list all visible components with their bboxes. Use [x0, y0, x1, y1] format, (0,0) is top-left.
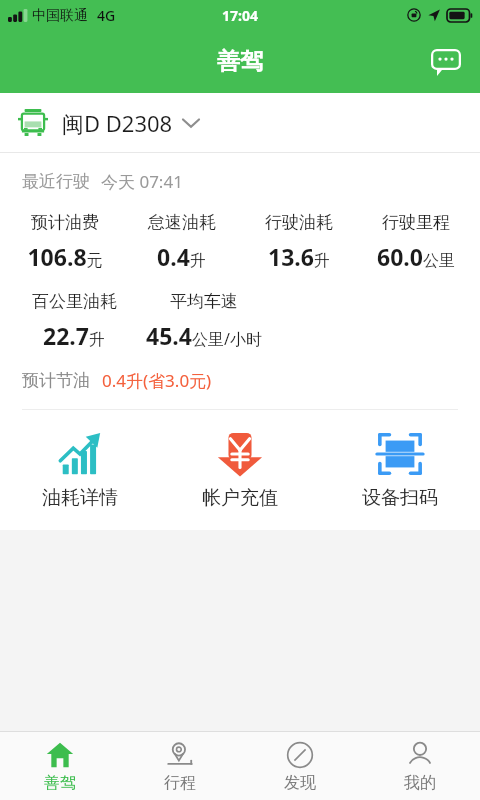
staticText: 预计油费 — [31, 212, 99, 233]
staticText: 善驾 — [217, 47, 263, 76]
button[interactable]: 设备扫码 — [320, 426, 480, 512]
staticText: 4G — [97, 6, 116, 25]
staticText: 中国联通 — [32, 7, 88, 25]
staticText: 22.7升 — [43, 320, 105, 351]
button[interactable]: 行程 — [120, 732, 240, 800]
staticText: 13.6升 — [268, 241, 330, 272]
staticText: 45.4公里/小时 — [146, 320, 262, 351]
staticText: 行驶里程 — [382, 212, 450, 233]
button[interactable]: 帐户充值 — [160, 426, 320, 512]
staticText: 帐户充值 — [202, 486, 278, 510]
staticText: 怠速油耗 — [148, 212, 216, 233]
staticText: 0.4升 — [157, 241, 206, 272]
staticText: 油耗详情 — [42, 486, 118, 510]
staticText: 平均车速 — [170, 291, 238, 312]
staticText: 17:04 — [222, 6, 258, 25]
staticText: 0.4升(省3.0元) — [102, 369, 212, 392]
button[interactable]: 行驶油耗 — [240, 212, 357, 272]
staticText: 行程 — [164, 773, 196, 793]
staticText: 善驾 — [44, 773, 76, 793]
button[interactable]: 我的 — [360, 732, 480, 800]
button[interactable]: 闽D D2308 — [0, 93, 480, 152]
staticText: 106.8元 — [27, 241, 103, 272]
staticText: 60.0公里 — [377, 241, 455, 272]
button[interactable]: 行驶里程 — [357, 212, 474, 272]
button[interactable]: 消息 — [422, 38, 470, 86]
staticText: 我的 — [404, 773, 436, 793]
staticText: 行驶油耗 — [265, 212, 333, 233]
button[interactable]: 善驾 — [0, 732, 120, 800]
button[interactable]: 油耗详情 — [0, 426, 160, 512]
button[interactable]: 怠速油耗 — [123, 212, 240, 272]
staticText: 最近行驶 — [22, 171, 90, 192]
staticText: 闽D D2308 — [62, 108, 173, 138]
staticText: 发现 — [284, 773, 316, 793]
staticText: 设备扫码 — [362, 486, 438, 510]
staticText: 百公里油耗 — [32, 291, 117, 312]
button[interactable]: 预计油费 — [6, 212, 123, 272]
staticText: 今天 07:41 — [101, 170, 183, 193]
staticText: 预计节油 — [22, 370, 90, 391]
button[interactable]: 发现 — [240, 732, 360, 800]
